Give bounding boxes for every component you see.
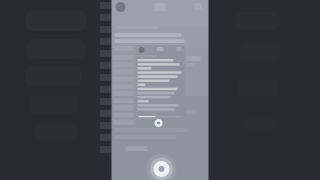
- button[interactable]: Profile: [115, 2, 125, 12]
- button[interactable]: Record: [146, 154, 176, 180]
- button[interactable]: Play: [154, 119, 162, 127]
- button[interactable]: Close: [176, 47, 181, 51]
